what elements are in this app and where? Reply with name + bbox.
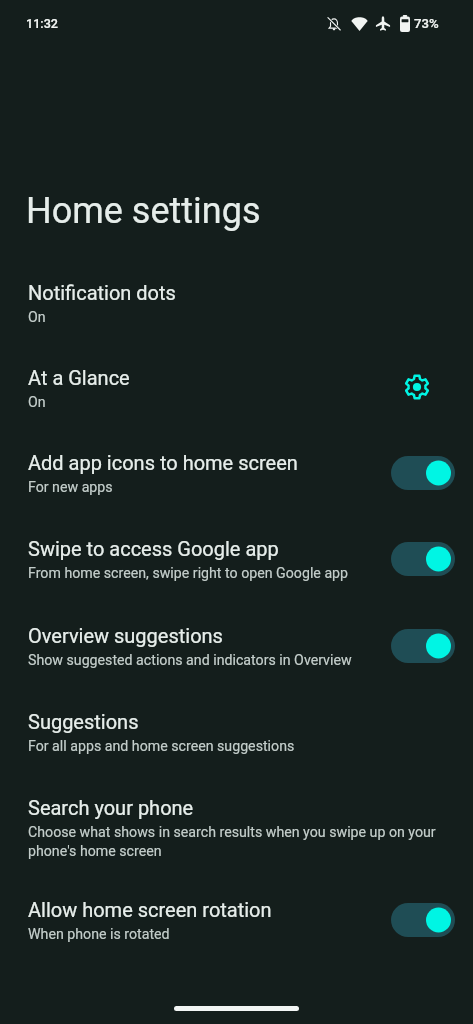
staticText: Search your phone	[28, 796, 194, 819]
other: Wi-Fi	[351, 16, 368, 31]
button[interactable]: At a Glance	[0, 346, 473, 431]
staticText: Show suggested actions and indicators in…	[28, 652, 352, 669]
button[interactable]: Swipe to access Google app	[0, 517, 473, 604]
staticText: Suggestions	[28, 710, 139, 733]
staticText: Add app icons to home screen	[28, 451, 298, 474]
staticText: From home screen, swipe right to open Go…	[28, 565, 349, 582]
staticText: Home settings	[26, 190, 261, 232]
staticText: Choose what shows in search results when…	[28, 824, 446, 860]
staticText: On	[28, 309, 46, 326]
other: Airplane mode	[375, 15, 391, 32]
staticText: Overview suggestions	[28, 624, 223, 647]
staticText: For new apps	[28, 479, 113, 496]
staticText: 11:32	[26, 16, 58, 31]
button[interactable]: At a Glance settings	[395, 365, 439, 409]
button[interactable]: Allow home screen rotation	[0, 878, 473, 963]
button[interactable]: Notification dots	[0, 261, 473, 346]
staticText: At a Glance	[28, 366, 130, 389]
other: Notifications silenced	[326, 16, 342, 32]
staticText: Notification dots	[28, 281, 176, 304]
button[interactable]: Toggle Add app icons to home screen	[386, 451, 460, 495]
staticText: For all apps and home screen suggestions	[28, 738, 295, 755]
button[interactable]: Toggle Swipe to access Google app	[386, 537, 460, 581]
staticText: Swipe to access Google app	[28, 537, 279, 560]
staticText: On	[28, 394, 46, 411]
staticText: Allow home screen rotation	[28, 898, 272, 921]
staticText: 73%	[414, 16, 439, 31]
button[interactable]: Overview suggestions	[0, 604, 473, 690]
button[interactable]: Add app icons to home screen	[0, 431, 473, 517]
staticText: When phone is rotated	[28, 926, 170, 943]
button[interactable]: Suggestions	[0, 690, 473, 776]
button[interactable]: Toggle Allow home screen rotation	[386, 898, 460, 942]
other: Battery 73 percent	[400, 15, 410, 32]
button[interactable]: Toggle Overview suggestions	[386, 624, 460, 668]
button[interactable]: Search your phone	[0, 776, 473, 878]
